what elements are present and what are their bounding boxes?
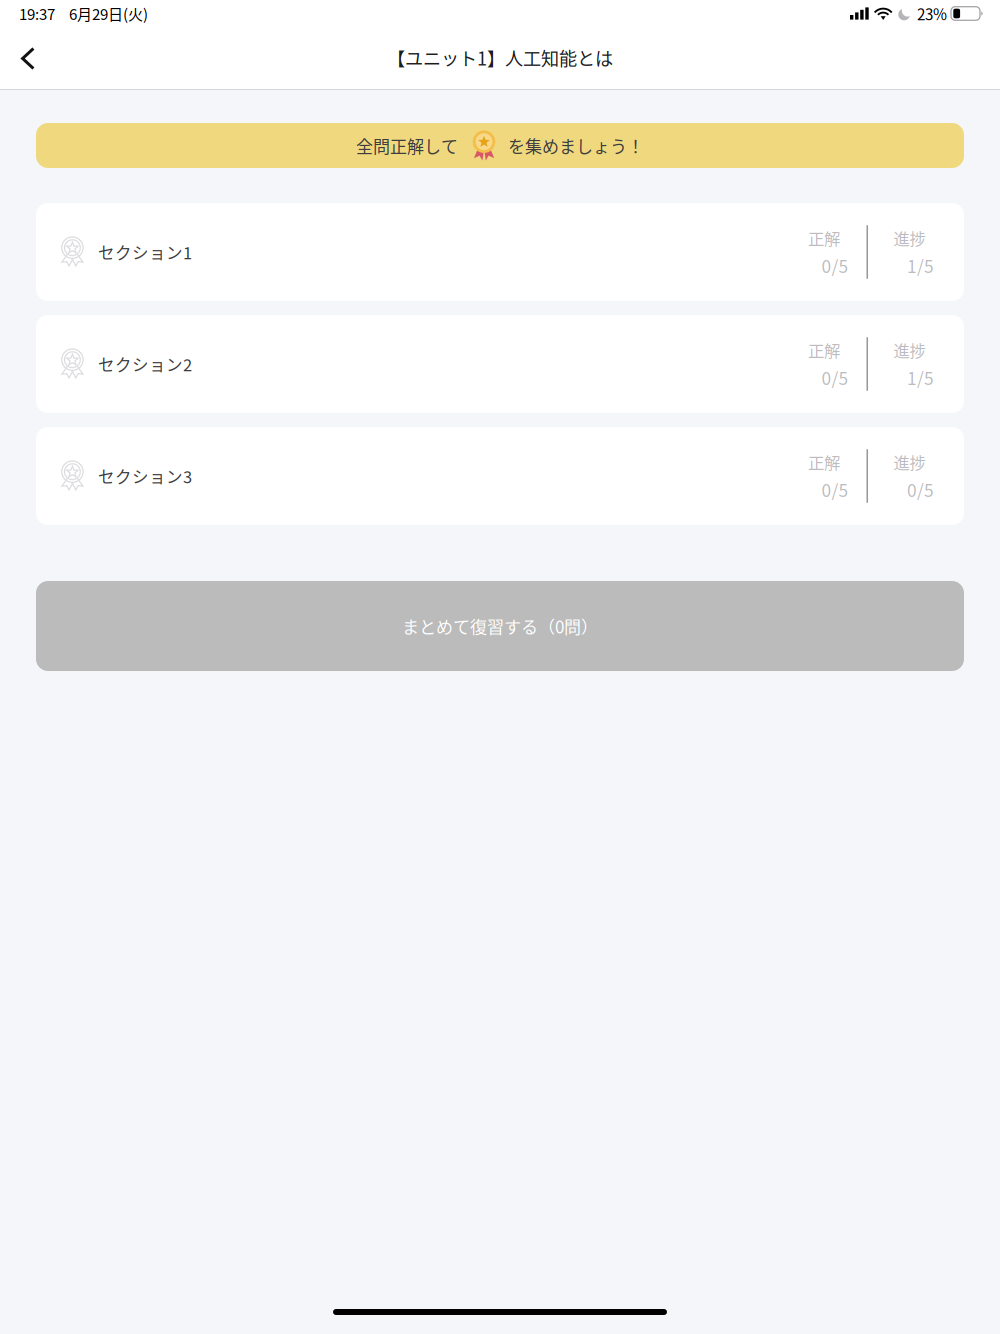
staticText: 進捗: [893, 450, 925, 474]
staticText: 0/5: [821, 253, 848, 278]
staticText: を集めましょう！: [508, 133, 644, 158]
staticText: 6月29日(火): [69, 3, 148, 24]
staticText: 0/5: [821, 477, 848, 502]
button[interactable]: まとめて復習する（0問）: [36, 581, 964, 671]
button[interactable]: 戻る: [0, 34, 52, 81]
staticText: セクション2: [98, 352, 192, 376]
button[interactable]: セクション2: [36, 315, 964, 413]
staticText: 23%: [917, 2, 947, 24]
staticText: 正解: [808, 226, 840, 250]
staticText: 正解: [808, 450, 840, 474]
staticText: 1/5: [907, 365, 934, 390]
staticText: 進捗: [893, 226, 925, 250]
staticText: 0/5: [907, 477, 934, 502]
staticText: 全問正解して: [356, 133, 458, 158]
button[interactable]: セクション3: [36, 427, 964, 525]
staticText: 0/5: [821, 365, 848, 390]
staticText: 19:37: [19, 3, 55, 24]
button[interactable]: セクション1: [36, 203, 964, 301]
staticText: 1/5: [907, 253, 934, 278]
staticText: セクション3: [98, 464, 192, 488]
staticText: まとめて復習する（0問）: [402, 614, 598, 638]
staticText: セクション1: [98, 240, 192, 264]
staticText: 進捗: [893, 338, 925, 362]
staticText: 正解: [808, 338, 840, 362]
staticText: 【ユニット1】人工知能とは: [387, 44, 613, 71]
